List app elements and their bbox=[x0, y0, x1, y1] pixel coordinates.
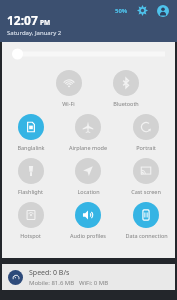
button[interactable]: Settings bbox=[136, 4, 149, 17]
staticText: Hotspot bbox=[20, 232, 41, 239]
staticText: Portrait bbox=[136, 144, 156, 151]
button[interactable]: Banglalink bbox=[2, 114, 59, 151]
staticText: Saturday, January 2 bbox=[7, 29, 62, 37]
button[interactable]: Airplane mode bbox=[59, 114, 117, 151]
staticText: 12:07 bbox=[7, 12, 38, 28]
staticText: 50% bbox=[115, 7, 128, 15]
staticText: Banglalink bbox=[17, 144, 45, 151]
button[interactable]: User profile bbox=[156, 4, 169, 17]
button[interactable]: Wi-Fi bbox=[40, 70, 97, 107]
button[interactable]: Bluetooth bbox=[97, 70, 154, 107]
button[interactable]: Audio profiles bbox=[59, 202, 117, 239]
staticText: PM bbox=[40, 18, 51, 27]
staticText: Airplane mode bbox=[69, 144, 107, 151]
button[interactable]: Speed: 0 B/s bbox=[2, 264, 175, 290]
staticText: Speed: 0 B/s bbox=[29, 268, 70, 278]
staticText: Mobile: 81.6 MB WiFi: 0 MB bbox=[29, 279, 109, 287]
button[interactable]: Brightness bbox=[2, 42, 175, 66]
button[interactable]: Hotspot bbox=[2, 202, 59, 239]
button[interactable]: Cast screen bbox=[117, 158, 175, 195]
button[interactable]: Flashlight bbox=[2, 158, 59, 195]
button[interactable]: Portrait bbox=[117, 114, 175, 151]
staticText: Flashlight bbox=[18, 188, 43, 195]
staticText: Location bbox=[77, 188, 100, 195]
staticText: Audio profiles bbox=[70, 232, 106, 239]
button[interactable]: Data connection bbox=[117, 202, 175, 239]
staticText: Bluetooth bbox=[113, 100, 139, 107]
staticText: Data connection bbox=[125, 232, 168, 239]
staticText: Wi-Fi bbox=[62, 100, 75, 107]
button[interactable]: Location bbox=[59, 158, 117, 195]
staticText: Cast screen bbox=[131, 188, 161, 195]
